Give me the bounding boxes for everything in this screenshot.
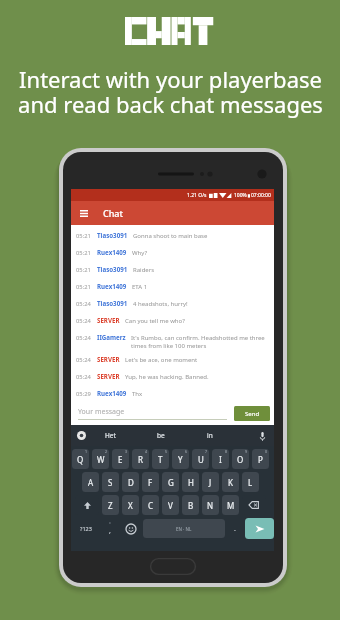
button[interactable]: K bbox=[222, 472, 239, 492]
staticText: 8 bbox=[225, 449, 228, 454]
button[interactable]: Backspace bbox=[242, 495, 266, 515]
button[interactable]: Send bbox=[245, 518, 274, 539]
staticText: K bbox=[228, 477, 233, 488]
staticText: D bbox=[128, 477, 134, 488]
staticText: 2 bbox=[105, 449, 108, 454]
staticText: . bbox=[234, 524, 236, 534]
button[interactable]: E bbox=[112, 449, 129, 469]
staticText: L bbox=[248, 477, 253, 488]
staticText: Can you tell me who? bbox=[125, 317, 185, 325]
button[interactable]: T bbox=[152, 449, 169, 469]
button[interactable]: Space bbox=[143, 519, 225, 538]
staticText: Z bbox=[108, 500, 113, 511]
button[interactable]: 05:24 bbox=[71, 312, 274, 329]
button[interactable]: Google assistant bbox=[77, 431, 86, 440]
button[interactable]: R bbox=[132, 449, 149, 469]
button[interactable]: 05:21 bbox=[71, 227, 274, 244]
button[interactable]: N bbox=[202, 495, 219, 515]
button[interactable]: 05:21 bbox=[71, 261, 274, 278]
staticText: I bbox=[219, 454, 222, 465]
button[interactable]: Voice input bbox=[256, 430, 268, 442]
staticText: Tiaso3091 bbox=[97, 231, 128, 239]
button[interactable]: D bbox=[122, 472, 139, 492]
button[interactable]: V bbox=[162, 495, 179, 515]
staticText: S bbox=[108, 477, 113, 488]
button[interactable]: A bbox=[82, 472, 99, 492]
staticText: It's Rumbo, can confirm. Headshotted me … bbox=[131, 334, 265, 350]
staticText: 05:24 bbox=[76, 300, 91, 308]
button[interactable]: F bbox=[142, 472, 159, 492]
staticText: G bbox=[168, 477, 174, 488]
button[interactable]: Emoji bbox=[119, 518, 143, 539]
button[interactable]: Your message bbox=[78, 407, 227, 420]
button[interactable]: Het bbox=[86, 425, 135, 446]
button[interactable]: 05:24 bbox=[71, 368, 274, 385]
staticText: 05:24 bbox=[76, 373, 91, 381]
button[interactable]: J bbox=[202, 472, 219, 492]
button[interactable]: Z bbox=[102, 495, 119, 515]
button[interactable]: I bbox=[212, 449, 229, 469]
staticText: Tiaso3091 bbox=[97, 265, 128, 273]
button[interactable]: Y bbox=[172, 449, 189, 469]
button[interactable]: Shift bbox=[75, 495, 99, 515]
button[interactable]: Q bbox=[72, 449, 89, 469]
staticText: 6 bbox=[185, 449, 188, 454]
button[interactable]: X bbox=[122, 495, 139, 515]
button[interactable]: O bbox=[232, 449, 249, 469]
staticText: Chat bbox=[103, 207, 123, 219]
staticText: H bbox=[188, 477, 194, 488]
staticText: W bbox=[97, 454, 105, 465]
button[interactable]: C bbox=[142, 495, 159, 515]
button[interactable]: Open navigation menu bbox=[80, 209, 88, 217]
button[interactable]: 05:24 bbox=[71, 295, 274, 312]
staticText: SERVER bbox=[97, 316, 120, 324]
button[interactable]: ?123 bbox=[72, 518, 100, 539]
button[interactable]: 05:21 bbox=[71, 244, 274, 261]
staticText: 9 bbox=[245, 449, 248, 454]
staticText: X bbox=[128, 500, 133, 511]
button[interactable]: B bbox=[182, 495, 199, 515]
button[interactable]: in bbox=[187, 425, 232, 446]
button[interactable]: M bbox=[222, 495, 239, 515]
staticText: Thx bbox=[132, 390, 143, 398]
button[interactable]: 05:29 bbox=[71, 385, 274, 401]
button[interactable]: Comma bbox=[100, 518, 119, 539]
staticText: E bbox=[118, 454, 123, 465]
button[interactable]: 05:21 bbox=[71, 278, 274, 295]
button[interactable]: W bbox=[92, 449, 109, 469]
staticText: U bbox=[198, 454, 204, 465]
staticText: P bbox=[258, 454, 263, 465]
staticText: be bbox=[157, 431, 165, 440]
button[interactable]: Send bbox=[234, 406, 270, 421]
button[interactable]: be bbox=[135, 425, 187, 446]
button[interactable]: P bbox=[252, 449, 269, 469]
button[interactable]: Home bbox=[150, 558, 196, 575]
staticText: EN · NL bbox=[176, 526, 192, 532]
button[interactable]: G bbox=[162, 472, 179, 492]
staticText: 05:24 bbox=[76, 334, 91, 342]
button[interactable]: L bbox=[242, 472, 259, 492]
button[interactable]: Period bbox=[225, 518, 245, 539]
staticText: 4 headshots, hurry! bbox=[133, 300, 188, 308]
staticText: Why? bbox=[132, 249, 148, 257]
staticText: 05:21 bbox=[76, 266, 91, 274]
staticText: Ruex1409 bbox=[97, 389, 127, 397]
button[interactable]: S bbox=[102, 472, 119, 492]
staticText: B bbox=[188, 500, 194, 511]
staticText: ?123 bbox=[80, 525, 92, 532]
staticText: 0 bbox=[265, 449, 268, 454]
staticText: 1 bbox=[85, 449, 88, 454]
staticText: V bbox=[168, 500, 173, 511]
button[interactable]: 05:24 bbox=[71, 329, 274, 351]
staticText: ° bbox=[109, 521, 111, 526]
button[interactable]: 05:24 bbox=[71, 351, 274, 368]
button[interactable]: H bbox=[182, 472, 199, 492]
staticText: J bbox=[209, 477, 212, 488]
button[interactable]: U bbox=[192, 449, 209, 469]
staticText: 5 bbox=[165, 449, 168, 454]
staticText: Ruex1409 bbox=[97, 282, 127, 290]
staticText: Let's be ace, one moment bbox=[125, 356, 198, 364]
staticText: Tiaso3091 bbox=[97, 299, 128, 307]
staticText: R bbox=[138, 454, 143, 465]
staticText: 05:21 bbox=[76, 283, 91, 291]
